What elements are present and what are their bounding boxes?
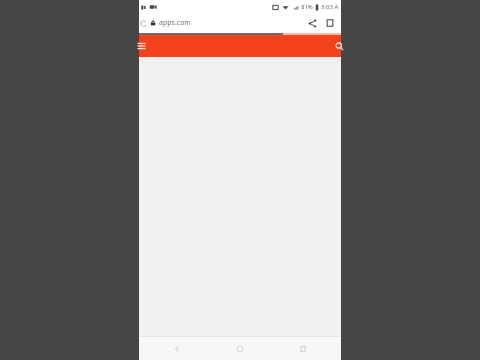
staticText: 81% — [301, 3, 313, 11]
button[interactable]: Back — [139, 13, 147, 33]
button[interactable]: Tabs — [321, 13, 339, 33]
button[interactable]: Share — [303, 13, 321, 33]
button[interactable]: Recent apps — [278, 337, 328, 360]
staticText: apps.com — [159, 18, 191, 28]
button[interactable]: Menu — [139, 35, 149, 57]
button[interactable]: Search — [331, 35, 341, 57]
staticText: 3:03 A — [321, 3, 339, 11]
button[interactable]: Home — [215, 337, 265, 360]
button[interactable]: apps.com — [147, 13, 303, 33]
